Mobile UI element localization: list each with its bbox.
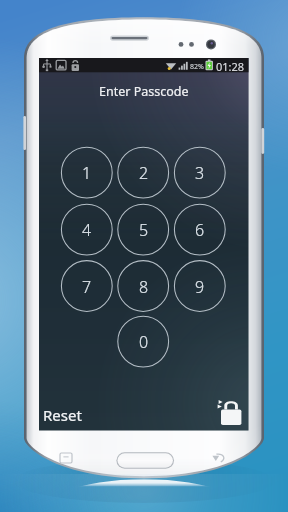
button[interactable]: 6: [174, 204, 225, 255]
staticText: 3: [195, 162, 205, 184]
staticText: 01:28: [216, 59, 245, 74]
staticText: 5: [139, 219, 149, 241]
button[interactable]: 8: [118, 261, 169, 312]
button[interactable]: 0: [118, 316, 169, 367]
staticText: 0: [139, 331, 149, 353]
button[interactable]: 4: [61, 204, 112, 255]
button[interactable]: 9: [174, 261, 225, 312]
button[interactable]: Unlock: [214, 396, 246, 428]
button[interactable]: 2: [118, 147, 169, 198]
staticText: 9: [195, 276, 205, 298]
staticText: Reset: [43, 405, 82, 425]
button[interactable]: 7: [61, 261, 112, 312]
staticText: 7: [82, 276, 92, 298]
button[interactable]: Reset: [43, 404, 87, 425]
staticText: 6: [195, 219, 205, 241]
button[interactable]: 5: [118, 204, 169, 255]
staticText: Enter Passcode: [99, 83, 189, 100]
staticText: 82%: [190, 62, 204, 72]
staticText: 1: [82, 162, 92, 184]
staticText: 2: [139, 162, 149, 184]
staticText: 8: [139, 276, 149, 298]
button[interactable]: 1: [61, 147, 112, 198]
staticText: 4: [82, 219, 92, 241]
button[interactable]: 3: [174, 147, 225, 198]
